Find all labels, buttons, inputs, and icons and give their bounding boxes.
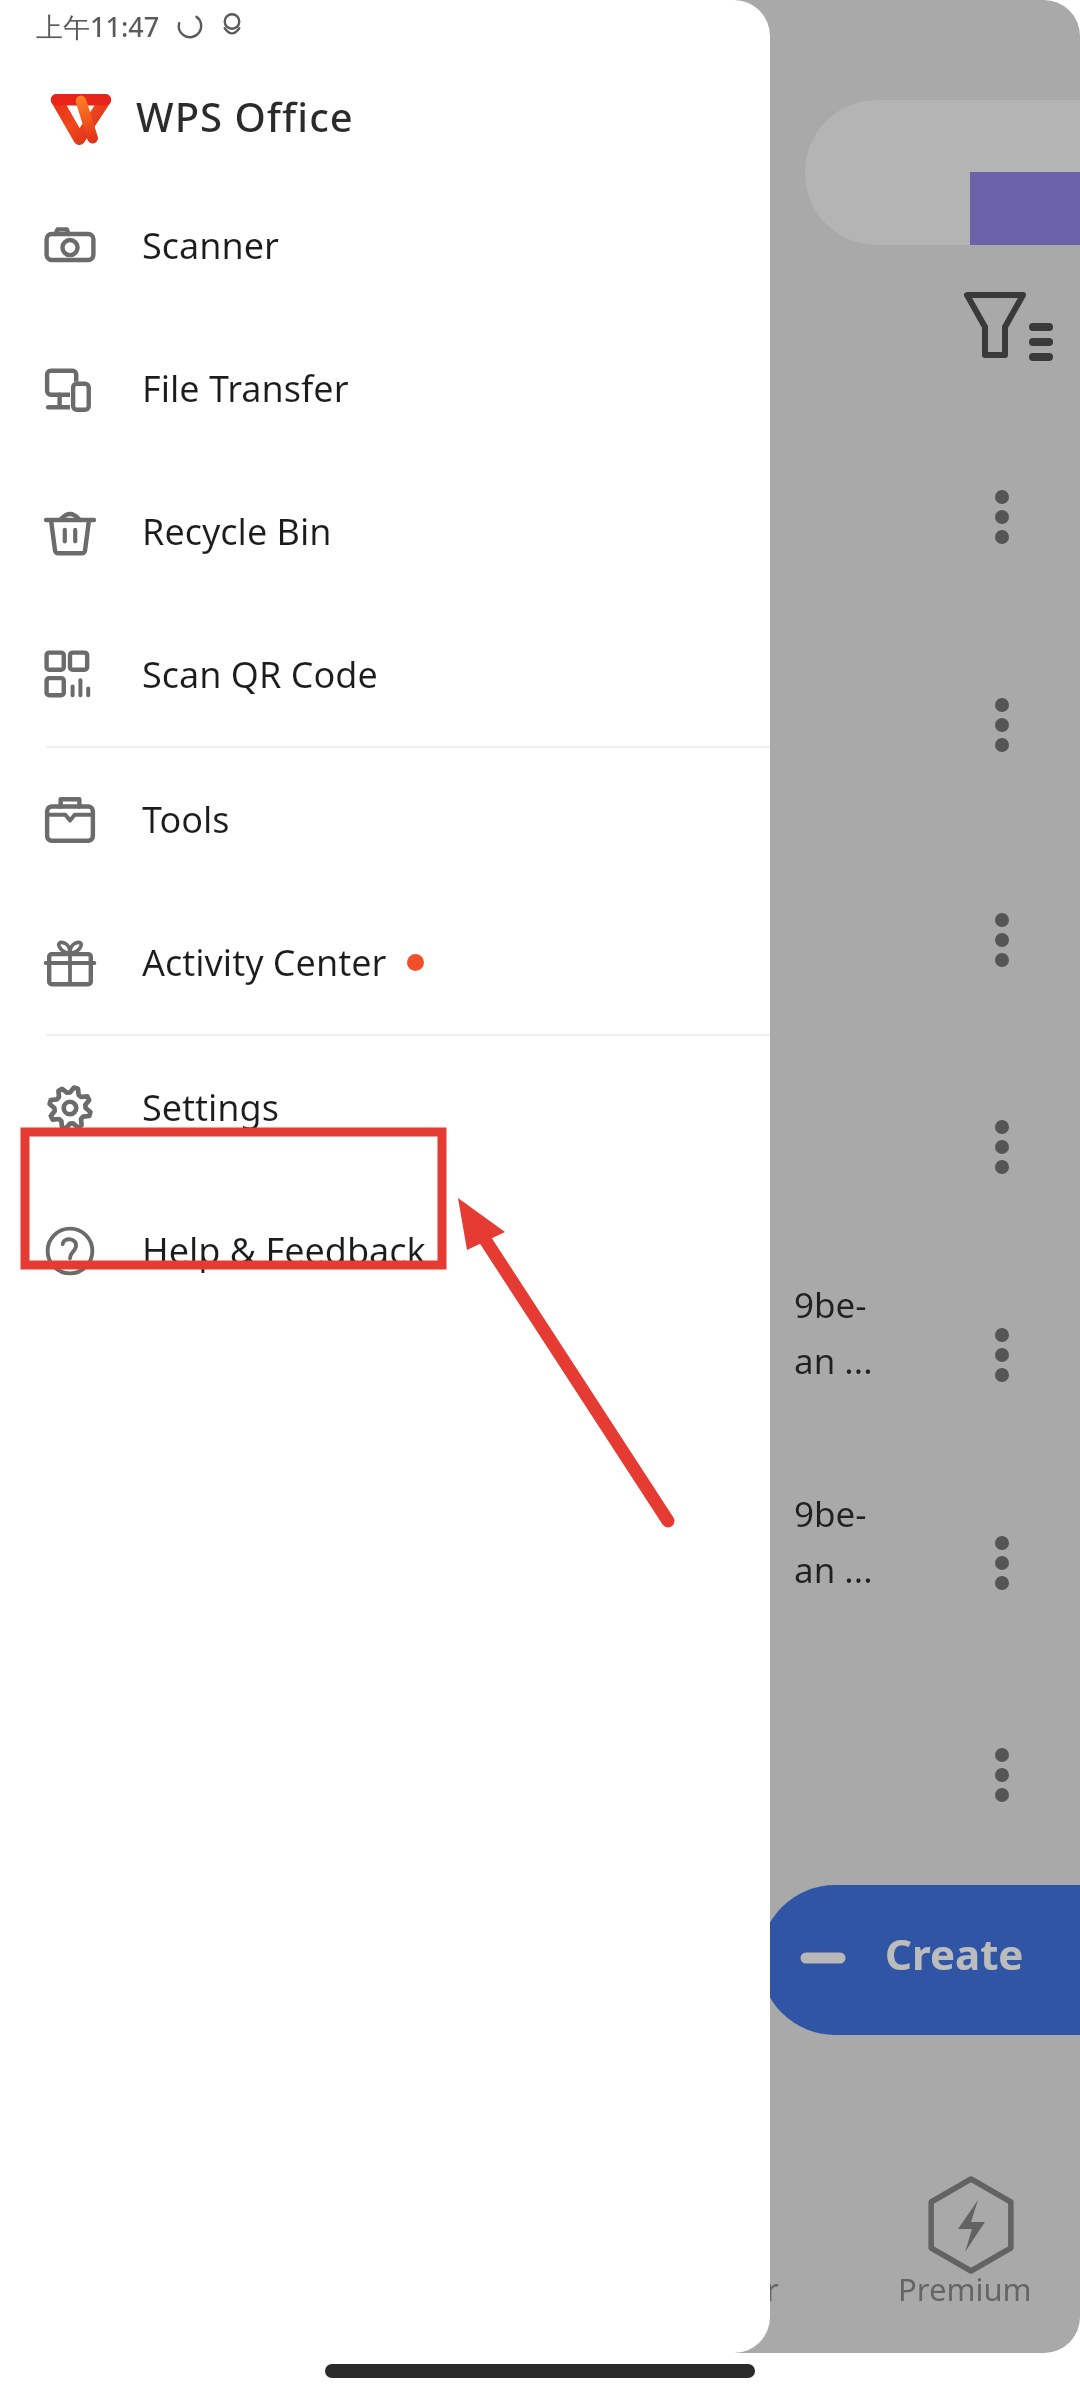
staticText: Activity Center (142, 938, 387, 987)
staticText: WPS Office (136, 89, 354, 143)
staticText: an ... (794, 1337, 873, 1385)
staticText: Settings (142, 1083, 279, 1132)
staticText: 9be- (794, 1281, 867, 1329)
staticText: 上午11:47 (36, 8, 160, 45)
button[interactable]: Activity Center (0, 891, 770, 1034)
staticText: Create (885, 1925, 1024, 1982)
staticText: 9be- (794, 1490, 867, 1538)
staticText: Help & Feedback (142, 1226, 426, 1275)
staticText: an ... (794, 1546, 873, 1594)
staticText: File Transfer (142, 364, 349, 413)
button[interactable]: Help & Feedback (0, 1179, 770, 1322)
staticText: Scanner (142, 221, 279, 270)
staticText: Recycle Bin (142, 507, 332, 556)
button[interactable]: Settings (0, 1036, 770, 1179)
staticText: Scan QR Code (142, 650, 378, 699)
button[interactable]: Scanner (0, 174, 770, 317)
staticText: Premium (898, 2268, 1032, 2310)
button[interactable]: Tools (0, 748, 770, 891)
other: Location (218, 12, 246, 40)
other: Do not disturb (176, 12, 204, 40)
button[interactable]: Recycle Bin (0, 460, 770, 603)
staticText: r (766, 2268, 779, 2310)
button[interactable]: File Transfer (0, 317, 770, 460)
button[interactable]: WPS Office (0, 78, 770, 154)
button[interactable]: Scan QR Code (0, 603, 770, 746)
staticText: Tools (142, 795, 230, 844)
